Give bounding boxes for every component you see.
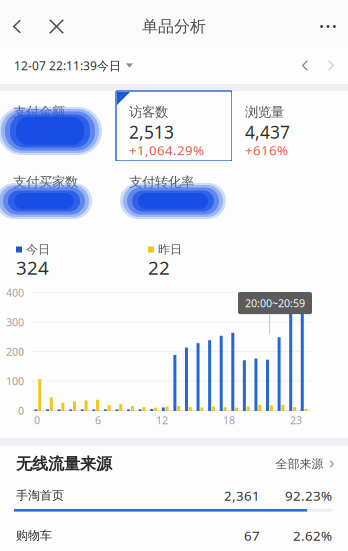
staticText: +616% (245, 141, 288, 159)
staticText: +1,064.29% (129, 141, 204, 159)
staticText: 4,437 (245, 120, 290, 143)
staticText: 支付转化率 (129, 174, 194, 190)
staticText: 今日 (26, 242, 50, 257)
staticText: 无线流量来源 (16, 454, 112, 474)
staticText: 6 (95, 413, 101, 427)
staticText: 100 (6, 374, 24, 388)
staticText: 2,513 (129, 120, 174, 143)
button[interactable]: 支付买家数 (0, 161, 116, 231)
button[interactable]: Back (0, 6, 35, 46)
staticText: 324 (16, 255, 49, 280)
staticText: 手淘首页 (16, 488, 64, 503)
staticText: 300 (6, 315, 24, 329)
button[interactable]: More options (306, 6, 348, 46)
button[interactable]: 购物车 (0, 522, 348, 551)
button[interactable]: Close (35, 6, 76, 47)
button[interactable]: Next day (317, 50, 348, 81)
staticText: 访客数 (129, 104, 168, 120)
staticText: 全部来源 (275, 457, 323, 471)
staticText: 支付金额 (13, 104, 65, 120)
staticText: 购物车 (16, 528, 52, 543)
button[interactable]: 访客数 (116, 91, 232, 161)
staticText: 18 (223, 413, 235, 427)
staticText: 92.23% (285, 487, 332, 504)
staticText: 22 (148, 255, 170, 280)
button[interactable]: 浏览量 (232, 91, 348, 161)
staticText: 20:00~20:59 (245, 296, 305, 310)
staticText: 12-07 22:11:39今日 (14, 57, 121, 73)
button[interactable]: 全部来源 (275, 449, 334, 479)
button[interactable]: 支付金额 (0, 91, 116, 161)
staticText: 支付买家数 (13, 174, 78, 190)
staticText: 2,361 (224, 487, 260, 504)
staticText: 0 (18, 403, 24, 418)
staticText: 23 (290, 413, 302, 427)
staticText: 浏览量 (245, 104, 284, 120)
staticText: 67 (244, 527, 260, 544)
staticText: 2.62% (293, 527, 332, 544)
button[interactable]: 手淘首页 (0, 482, 348, 522)
button[interactable]: 支付转化率 (116, 161, 232, 231)
button[interactable]: 12-07 22:11:39今日 (0, 47, 133, 83)
staticText: 0 (34, 413, 40, 427)
staticText: 400 (6, 285, 24, 300)
button[interactable]: Previous day (293, 50, 317, 81)
staticText: 200 (6, 344, 24, 359)
staticText: 12 (156, 413, 168, 427)
staticText: 昨日 (158, 242, 182, 257)
staticText: 单品分析 (142, 17, 206, 36)
